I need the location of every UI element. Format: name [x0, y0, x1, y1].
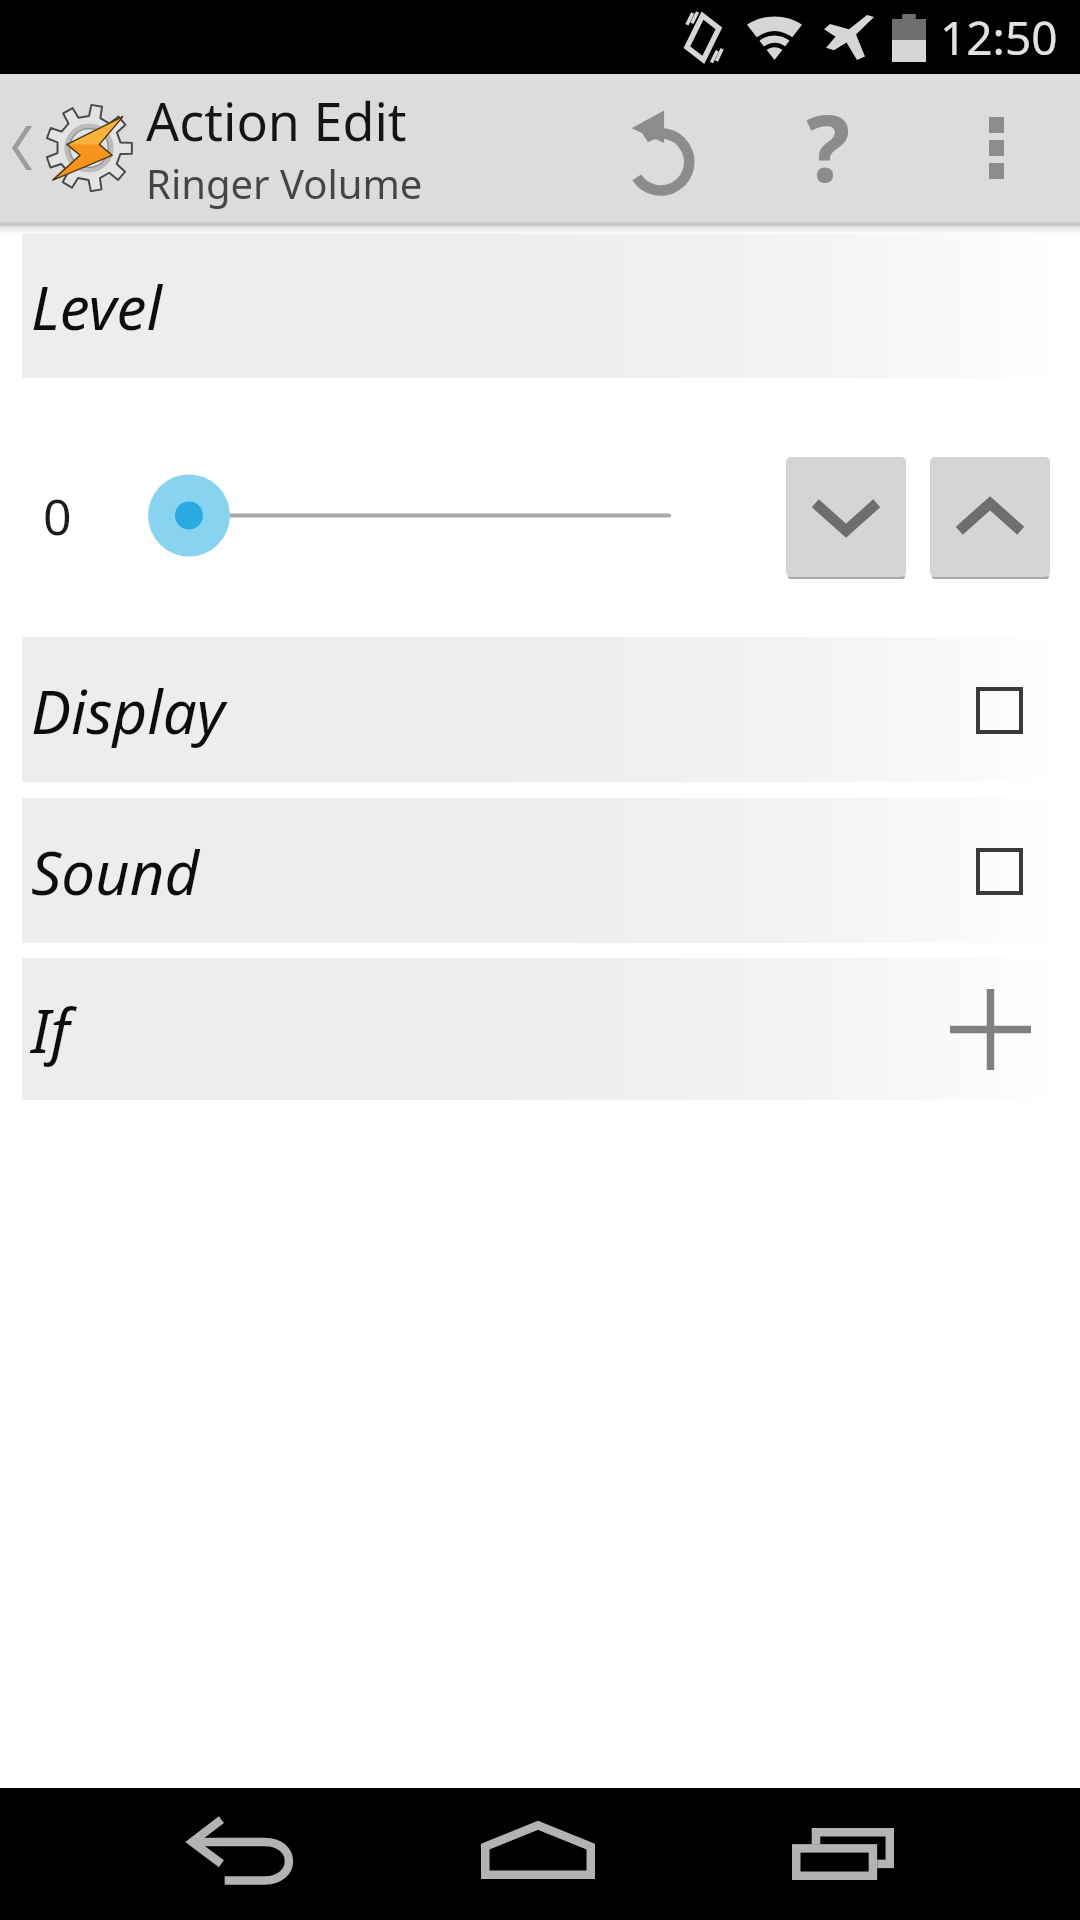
staticText: Action Edit	[146, 85, 407, 156]
button[interactable]: Level slider	[120, 378, 720, 637]
button[interactable]: Help	[744, 74, 912, 222]
staticText: If	[31, 989, 70, 1071]
button[interactable]: Decrease level	[786, 457, 906, 580]
button[interactable]: Recents	[739, 1788, 947, 1920]
button[interactable]: Back	[139, 1791, 347, 1920]
staticText: 0	[43, 482, 72, 550]
staticText: 12:50	[940, 6, 1058, 69]
button[interactable]: Reset	[576, 74, 744, 222]
button[interactable]: Toggle	[954, 665, 1044, 755]
staticText: Display	[31, 670, 225, 752]
staticText: Level	[31, 266, 162, 348]
button[interactable]: Level	[22, 234, 1058, 378]
button[interactable]: Home	[434, 1784, 642, 1916]
button[interactable]: Increase level	[930, 457, 1050, 580]
staticText: Sound	[31, 831, 200, 913]
button[interactable]: Add condition	[940, 979, 1040, 1079]
button[interactable]: Sound	[22, 798, 1058, 943]
button[interactable]: Navigate up	[0, 74, 44, 222]
button[interactable]: Toggle	[954, 826, 1044, 916]
button[interactable]: If	[22, 958, 1058, 1100]
button[interactable]: Display	[22, 637, 1058, 782]
button[interactable]: More options	[912, 74, 1080, 222]
staticText: ?	[806, 84, 850, 209]
staticText: Ringer Volume	[146, 156, 423, 210]
